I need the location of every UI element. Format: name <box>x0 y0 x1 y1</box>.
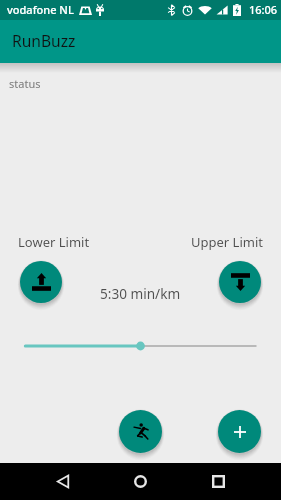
button[interactable]: Pace slider <box>0 339 281 353</box>
staticText: Upper Limit <box>191 233 263 251</box>
button[interactable]: Back <box>44 463 81 500</box>
button[interactable]: Start run <box>119 410 162 453</box>
button[interactable]: Recents <box>200 463 237 500</box>
staticText: vodafone NL <box>7 2 74 17</box>
staticText: Lower Limit <box>18 233 90 251</box>
button[interactable]: Home <box>122 463 159 500</box>
staticText: 5:30 min/km <box>100 284 181 303</box>
staticText: status <box>9 76 41 91</box>
button[interactable]: Decrease lower limit <box>20 261 62 303</box>
staticText: 16:06 <box>249 2 278 17</box>
button[interactable]: Add <box>218 410 261 453</box>
staticText: RunBuzz <box>12 30 76 51</box>
button[interactable]: Increase upper limit <box>219 261 261 303</box>
